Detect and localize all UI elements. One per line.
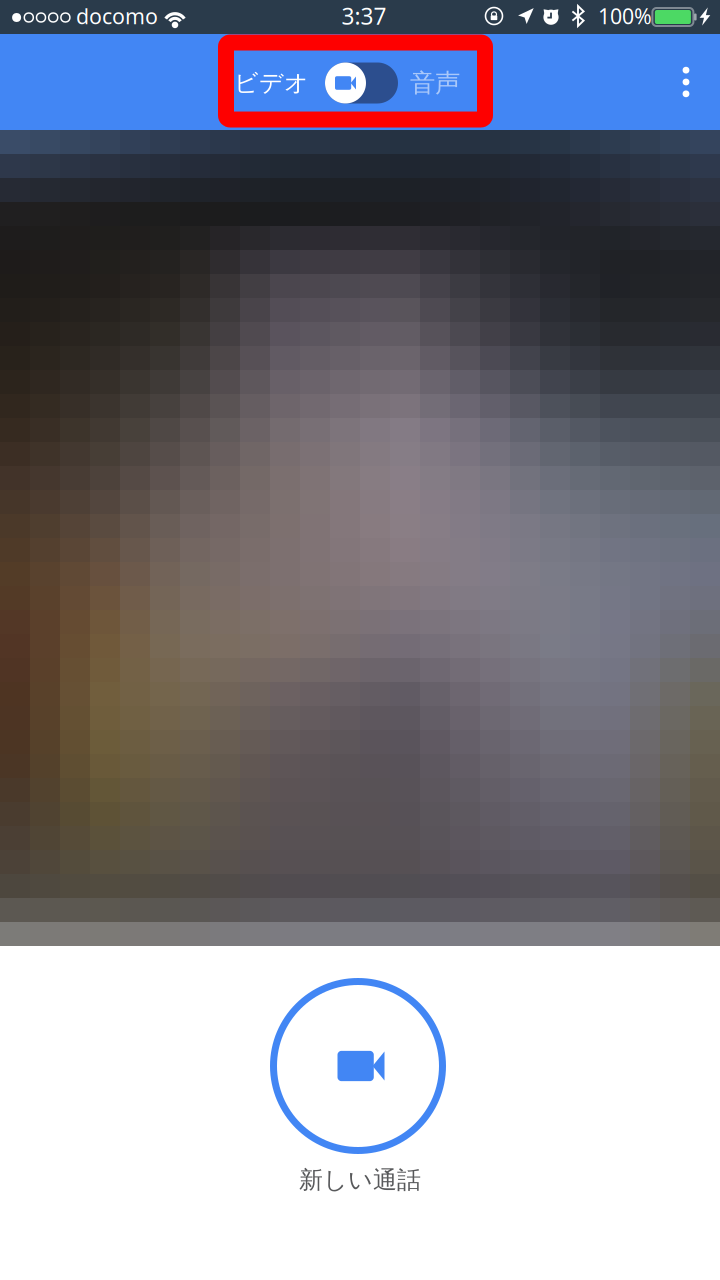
button[interactable]: Switch between video and audio call — [325, 62, 398, 103]
staticText: 音声 — [410, 67, 460, 98]
staticText: 新しい通話 — [299, 1165, 421, 1195]
staticText: docomo — [76, 2, 158, 30]
staticText: ビデオ — [234, 68, 309, 98]
staticText: 100% — [598, 2, 652, 30]
button[interactable]: More options — [654, 34, 718, 130]
staticText: 3:37 — [341, 1, 386, 31]
button[interactable]: New call — [267, 975, 449, 1157]
